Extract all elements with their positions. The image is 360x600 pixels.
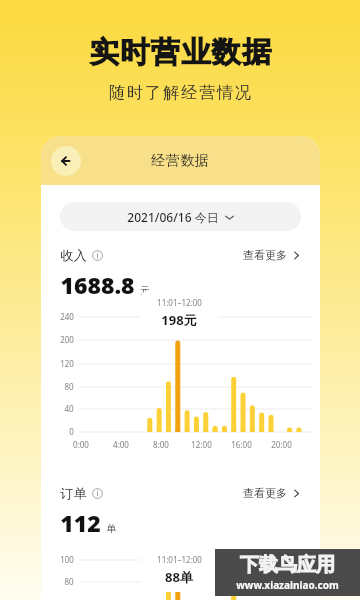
staticText: 16:00 xyxy=(231,439,252,450)
staticText: 240 xyxy=(60,311,74,322)
staticText: 元 xyxy=(140,284,150,297)
staticText: 198元 xyxy=(161,311,197,329)
button[interactable]: Back xyxy=(51,146,81,176)
staticText: 下载鸟应用 xyxy=(240,553,335,577)
button[interactable]: 2021/06/16 今日 xyxy=(60,202,301,231)
staticText: 0 xyxy=(69,426,74,437)
staticText: 0:00 xyxy=(73,439,89,450)
staticText: 80 xyxy=(64,576,74,587)
staticText: 120 xyxy=(60,358,74,369)
staticText: 80 xyxy=(64,381,74,392)
staticText: 200 xyxy=(60,334,74,345)
staticText: 单 xyxy=(106,522,116,535)
staticText: 4:00 xyxy=(113,439,129,450)
staticText: 经营数据 xyxy=(151,152,210,170)
staticText: 收入 xyxy=(60,247,87,263)
staticText: 100 xyxy=(60,554,74,565)
button[interactable]: 查看更多 xyxy=(243,248,301,262)
staticText: www.xiazainiao.com xyxy=(236,578,339,592)
staticText: 11:01–12:00 xyxy=(157,554,202,565)
staticText: 112 xyxy=(60,507,101,538)
staticText: 随时了解经营情况 xyxy=(108,83,252,103)
staticText: 实时营业数据 xyxy=(89,34,272,71)
staticText: 12:00 xyxy=(191,439,212,450)
staticText: 11:01–12:00 xyxy=(157,297,202,308)
staticText: 88单 xyxy=(165,568,193,586)
button[interactable]: 查看更多 xyxy=(243,486,301,500)
staticText: 1688.8 xyxy=(60,269,135,300)
staticText: 2021/06/16 今日 xyxy=(127,209,219,225)
staticText: 20:00 xyxy=(271,439,292,450)
staticText: 查看更多 xyxy=(243,248,287,262)
staticText: 订单 xyxy=(60,485,87,501)
staticText: 40 xyxy=(64,403,74,414)
staticText: 8:00 xyxy=(153,439,169,450)
staticText: 查看更多 xyxy=(243,486,287,500)
